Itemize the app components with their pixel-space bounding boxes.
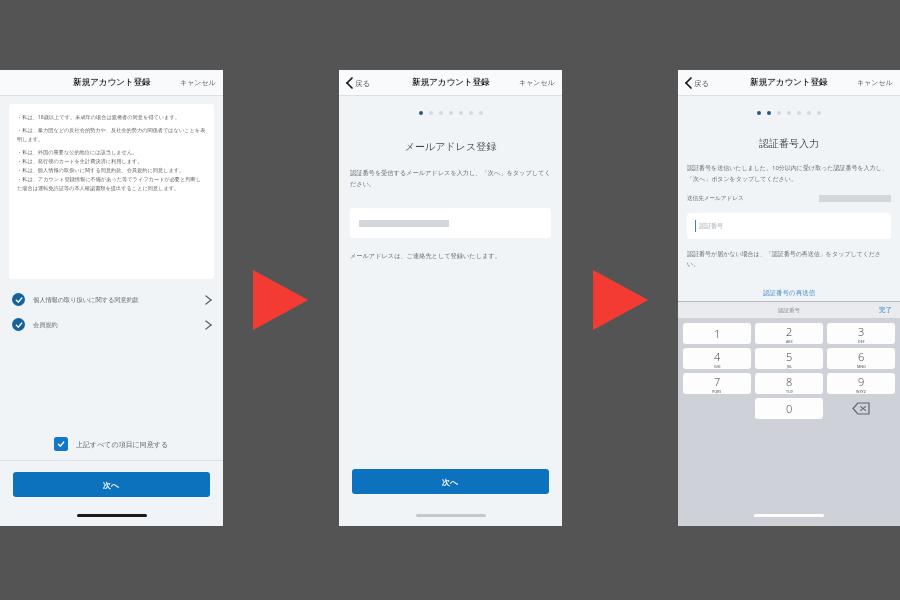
staticText: 戻る — [355, 79, 371, 88]
staticText: キャンセル — [857, 78, 893, 87]
staticText: WXYZ — [856, 389, 866, 394]
button[interactable]: 5 — [755, 348, 823, 369]
staticText: 9 — [858, 374, 865, 389]
button[interactable]: キャンセル — [517, 74, 557, 91]
staticText: キャンセル — [180, 78, 216, 87]
staticText: キャンセル — [519, 78, 555, 87]
button[interactable]: 1 — [683, 323, 751, 344]
staticText: ・私は、18歳以上です。未成年の場合は親権者の同意を得ています。 — [17, 113, 180, 120]
button[interactable]: 3 — [827, 323, 895, 344]
staticText: PQRS — [712, 389, 722, 394]
button[interactable]: 次へ — [13, 472, 210, 497]
staticText: メールアドレス登録 — [339, 140, 562, 153]
button[interactable]: 6 — [827, 348, 895, 369]
button[interactable]: 認証番号の再送信 — [759, 285, 820, 301]
staticText: 2 — [786, 324, 793, 339]
staticText: 送信先メールアドレス — [687, 195, 744, 202]
staticText: 0 — [786, 401, 793, 416]
staticText: メールアドレスは、ご連絡先として登録いたします。 — [350, 252, 501, 260]
staticText: 7 — [714, 374, 721, 389]
button[interactable]: 戻る — [683, 74, 712, 92]
staticText: TUV — [786, 389, 793, 394]
staticText: 上記すべての項目に同意する — [76, 440, 169, 449]
staticText: GHI — [714, 364, 721, 369]
staticText: 認証番号を受信するメールアドレスを入力し、「次へ」をタップしてください。 — [350, 169, 551, 188]
button[interactable]: 次へ — [352, 469, 549, 494]
button[interactable]: キャンセル — [855, 74, 895, 91]
button[interactable]: 認証番号 — [687, 213, 891, 239]
button[interactable]: 0 — [755, 398, 823, 419]
staticText: 新規アカウント登録 — [73, 77, 151, 88]
button[interactable]: 2 — [755, 323, 823, 344]
staticText: DEF — [858, 339, 865, 344]
staticText: 4 — [714, 349, 721, 364]
button[interactable]: キャンセル — [178, 74, 218, 91]
staticText: 8 — [786, 374, 793, 389]
staticText: 6 — [858, 349, 865, 364]
staticText: 認証番号入力 — [678, 137, 900, 150]
staticText: 3 — [858, 324, 865, 339]
button[interactable]: 削除 — [827, 398, 895, 419]
button[interactable]: 個人情報の取り扱いに関する同意約款 — [0, 287, 223, 312]
button[interactable]: 戻る — [344, 74, 373, 92]
staticText: 認証番号の再送信 — [763, 289, 816, 297]
button[interactable]: 上記すべての項目に同意する — [0, 428, 223, 460]
staticText: 認証番号を送信いたしました。10分以内に受け取った認証番号を入力し、「次へ」ボタ… — [687, 164, 891, 182]
staticText: ABC — [786, 339, 793, 344]
button[interactable]: 会員規約 — [0, 312, 223, 337]
staticText: 新規アカウント登録 — [750, 77, 828, 88]
staticText: 1 — [714, 326, 721, 341]
button[interactable]: 7 — [683, 373, 751, 394]
button[interactable]: 完了 — [877, 304, 894, 316]
staticText: 次へ — [103, 480, 120, 490]
button[interactable]: 9 — [827, 373, 895, 394]
staticText: 5 — [786, 349, 793, 364]
staticText: 会員規約 — [33, 321, 58, 329]
staticText: 認証番号 — [699, 222, 723, 230]
staticText: 個人情報の取り扱いに関する同意約款 — [33, 296, 140, 304]
button[interactable]: 8 — [755, 373, 823, 394]
staticText: 次へ — [442, 477, 459, 487]
staticText: JKL — [787, 364, 793, 369]
staticText: MNO — [857, 364, 866, 369]
button[interactable] — [350, 208, 551, 238]
staticText: 認証番号が届かない場合は、「認証番号の再送信」をタップしてください。 — [687, 250, 891, 267]
staticText: ・私は、外国の重要な公的地位には該当しません。 ・私は、発行後のカードを生計費決… — [17, 149, 206, 191]
staticText: 新規アカウント登録 — [412, 77, 490, 88]
staticText: 戻る — [694, 79, 710, 88]
staticText: 完了 — [879, 306, 892, 314]
staticText: 認証番号 — [778, 307, 800, 314]
button[interactable]: 4 — [683, 348, 751, 369]
staticText: ・私は、暴力団などの反社会的勢力や、反社会的勢力の関係者ではないことを表明します… — [17, 127, 206, 142]
